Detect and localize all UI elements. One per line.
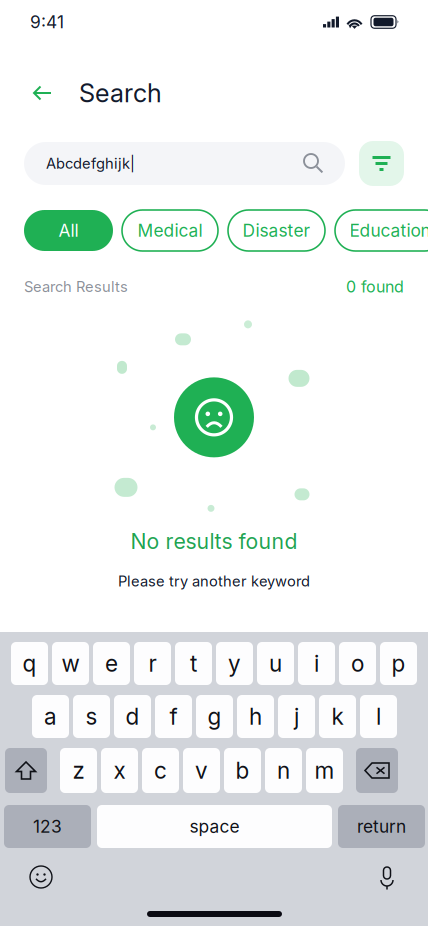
staticText: m	[314, 757, 334, 784]
button[interactable]: m	[306, 748, 343, 793]
staticText: 0 found	[346, 277, 404, 296]
button[interactable]: b	[224, 748, 261, 793]
button[interactable]: o	[339, 642, 376, 685]
staticText: No results found	[130, 528, 297, 554]
staticText: 123	[33, 816, 62, 837]
staticText: u	[269, 650, 282, 677]
button[interactable]: k	[319, 695, 356, 738]
staticText: e	[105, 650, 118, 677]
button[interactable]: Back	[26, 77, 58, 109]
staticText: Search	[79, 78, 162, 108]
button[interactable]: v	[183, 748, 220, 793]
button[interactable]: Filter	[359, 141, 404, 186]
button[interactable]: d	[114, 695, 151, 738]
staticText: All	[58, 220, 78, 241]
staticText: x	[113, 757, 125, 784]
staticText: z	[72, 757, 84, 784]
button[interactable]: n	[265, 748, 302, 793]
button[interactable]: Disaster	[228, 210, 325, 251]
staticText: Search Results	[24, 278, 128, 295]
button[interactable]: 123	[4, 805, 91, 848]
staticText: t	[190, 650, 197, 677]
staticText: f	[169, 703, 177, 730]
staticText: h	[249, 703, 262, 730]
staticText: space	[189, 816, 239, 837]
staticText: w	[61, 650, 79, 677]
staticText: Education	[349, 220, 428, 241]
button[interactable]: i	[298, 642, 335, 685]
button[interactable]: r	[134, 642, 171, 685]
staticText: return	[357, 816, 406, 837]
staticText: Disaster	[242, 220, 310, 241]
staticText: Medical	[137, 220, 202, 241]
button[interactable]: Abcdefghijk|	[24, 142, 345, 185]
button[interactable]: return	[338, 805, 425, 848]
button[interactable]: Education	[335, 210, 428, 251]
staticText: k	[331, 703, 343, 730]
button[interactable]: s	[73, 695, 110, 738]
button[interactable]: t	[175, 642, 212, 685]
staticText: q	[22, 650, 36, 677]
staticText: o	[351, 650, 364, 677]
button[interactable]: l	[360, 695, 397, 738]
staticText: v	[195, 757, 208, 784]
button[interactable]: p	[380, 642, 417, 685]
button[interactable]: c	[142, 748, 179, 793]
button[interactable]: x	[101, 748, 138, 793]
button[interactable]: j	[278, 695, 315, 738]
staticText: r	[148, 650, 156, 677]
staticText: b	[235, 757, 249, 784]
button[interactable]: q	[11, 642, 48, 685]
staticText: s	[85, 703, 97, 730]
staticText: Please try another keyword	[118, 572, 310, 590]
button[interactable]: Shift	[5, 748, 47, 793]
button[interactable]: Delete	[356, 748, 398, 793]
button[interactable]: z	[60, 748, 97, 793]
button[interactable]: f	[155, 695, 192, 738]
button[interactable]: Dictate	[370, 860, 404, 894]
button[interactable]: h	[237, 695, 274, 738]
button[interactable]: e	[93, 642, 130, 685]
button[interactable]: All	[24, 210, 113, 251]
staticText: y	[228, 650, 241, 677]
staticText: a	[44, 703, 57, 730]
staticText: j	[294, 703, 299, 730]
staticText: i	[314, 650, 319, 677]
staticText: n	[277, 757, 290, 784]
staticText: p	[391, 650, 405, 677]
button[interactable]: space	[97, 805, 332, 848]
staticText: d	[125, 703, 139, 730]
staticText: l	[376, 703, 381, 730]
staticText: Abcdefghijk|	[46, 155, 135, 172]
staticText: c	[154, 757, 167, 784]
button[interactable]: Medical	[122, 210, 218, 251]
button[interactable]: Emoji	[24, 860, 58, 894]
button[interactable]: y	[216, 642, 253, 685]
button[interactable]: g	[196, 695, 233, 738]
staticText: g	[207, 703, 221, 730]
button[interactable]: a	[32, 695, 69, 738]
button[interactable]: u	[257, 642, 294, 685]
button[interactable]: w	[52, 642, 89, 685]
staticText: 9:41	[30, 11, 64, 32]
